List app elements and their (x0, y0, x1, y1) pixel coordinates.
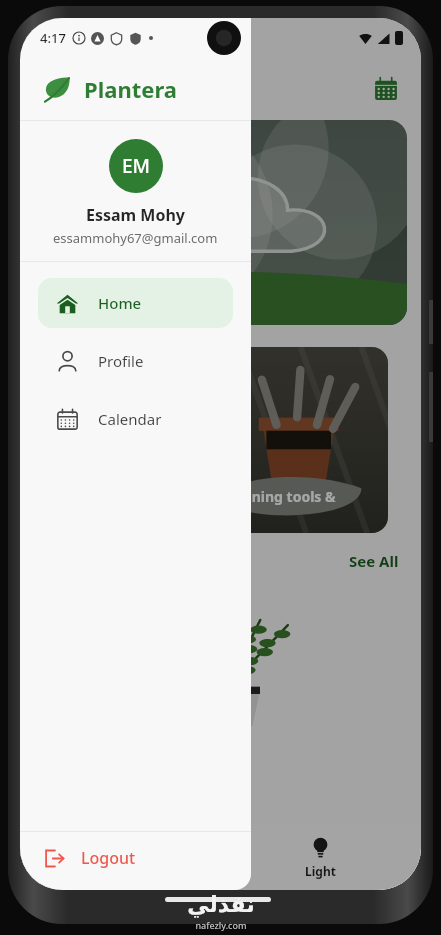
staticText: Home (98, 293, 142, 313)
staticText: EM (122, 153, 151, 179)
button[interactable]: My Plants (20, 824, 220, 890)
staticText: Logout (81, 847, 136, 869)
button[interactable]: Profile (38, 336, 233, 386)
staticText: Profile (98, 351, 144, 371)
button[interactable]: Home (38, 278, 233, 328)
staticText: essammohy67@gmail.com (53, 229, 218, 247)
button[interactable]: Calendar (373, 76, 399, 102)
staticText: Light (305, 863, 336, 879)
staticText: Calendar (98, 409, 162, 429)
staticText: نفذلي (187, 892, 255, 918)
button[interactable]: Gardening tools & (198, 347, 388, 533)
staticText: Essam Mohy (86, 204, 185, 226)
staticText: Plantera (84, 74, 177, 104)
staticText: 4:17 (40, 29, 66, 47)
button[interactable] (34, 120, 407, 325)
button[interactable]: Light (220, 824, 421, 890)
button[interactable]: EM (109, 139, 163, 193)
button[interactable]: Calendar (38, 394, 233, 444)
button[interactable] (34, 347, 184, 533)
staticText: nafezly.com (195, 919, 247, 931)
button[interactable]: Logout (20, 832, 251, 884)
staticText: Gardening tools & (210, 487, 336, 506)
staticText: My Plants (91, 863, 150, 879)
button[interactable]: See All (349, 551, 399, 571)
